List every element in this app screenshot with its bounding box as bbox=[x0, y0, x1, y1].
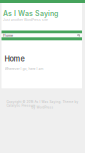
staticText: Home bbox=[3, 33, 13, 37]
staticText: As I Was Saying bbox=[3, 9, 58, 18]
button[interactable]: Search bbox=[78, 33, 82, 37]
button[interactable]: Home bbox=[1, 33, 13, 37]
staticText: by WordPress bbox=[31, 105, 53, 109]
staticText: Home bbox=[4, 54, 24, 63]
staticText: Just another WordPress site bbox=[3, 18, 48, 22]
staticText: Wherever I go, here I am bbox=[4, 67, 43, 71]
staticText: Copyright © 2016 As I Was Saying. Theme … bbox=[6, 100, 78, 107]
